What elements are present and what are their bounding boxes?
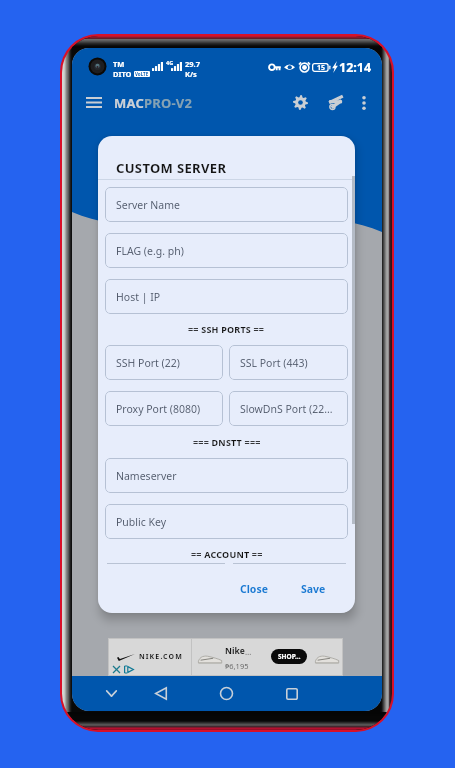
button[interactable]: Ad choices [124, 666, 134, 673]
button[interactable]: Home [210, 677, 243, 710]
staticText: CUSTOM SERVER [116, 159, 227, 177]
button[interactable]: FLAG (e.g. ph) [105, 233, 348, 268]
button[interactable]: Speed test [322, 89, 348, 115]
staticText: 12:14 [339, 59, 372, 76]
staticText: SHOP… [278, 652, 301, 661]
staticText: Proxy Port (8080) [116, 402, 201, 416]
staticText: PRO-V2 [144, 94, 193, 112]
staticText: SSH Port (22) [116, 356, 180, 370]
button[interactable]: Settings [287, 89, 313, 115]
button[interactable]: SSL Port (443) [229, 345, 348, 380]
button[interactable]: Close ad [113, 666, 120, 673]
button[interactable]: More options [353, 89, 375, 116]
staticText: Public Key [116, 515, 167, 529]
button[interactable]: Advertisement [108, 638, 343, 676]
staticText: 4G [166, 59, 174, 66]
staticText: 29.7 [185, 59, 200, 69]
staticText: MAC [114, 94, 144, 112]
button[interactable]: Host | IP [105, 279, 348, 314]
button[interactable]: Save [295, 577, 332, 601]
staticText: DITO [113, 69, 132, 79]
button[interactable]: Recent apps [275, 677, 308, 710]
button[interactable]: Hide keyboard [95, 677, 128, 710]
button[interactable]: Nameserver [105, 458, 348, 493]
button[interactable]: Proxy Port (8080) [105, 391, 223, 426]
staticText: Close [240, 582, 268, 596]
staticText: Nike [225, 645, 245, 657]
staticText: Host | IP [116, 290, 161, 304]
staticText: K/s [185, 69, 197, 79]
button[interactable]: Close [234, 577, 274, 601]
button[interactable]: SHOP… [271, 649, 307, 664]
staticText: Nameserver [116, 469, 177, 483]
staticText: VoLTE [135, 71, 149, 77]
staticText: NIKE.COM [139, 652, 183, 662]
staticText: 15 [317, 63, 326, 72]
button[interactable]: Server Name [105, 187, 348, 222]
staticText: TM [113, 59, 125, 69]
staticText: SlowDnS Port (22… [240, 402, 333, 416]
staticText: === DNSTT === [193, 436, 261, 448]
staticText: FLAG (e.g. ph) [116, 244, 184, 258]
staticText: Server Name [116, 198, 180, 212]
button[interactable]: SSH Port (22) [105, 345, 223, 380]
button[interactable]: Open navigation menu [82, 89, 106, 116]
staticText: ₱6,195 [225, 661, 249, 671]
staticText: == ACCOUNT == [191, 548, 263, 560]
staticText: SSL Port (443) [240, 356, 308, 370]
staticText: == SSH PORTS == [188, 323, 265, 335]
button[interactable]: Public Key [105, 504, 348, 539]
button[interactable]: Back [144, 677, 177, 710]
staticText: Save [301, 582, 326, 596]
staticText: … [245, 646, 252, 657]
button[interactable]: SlowDnS Port (22… [229, 391, 348, 426]
